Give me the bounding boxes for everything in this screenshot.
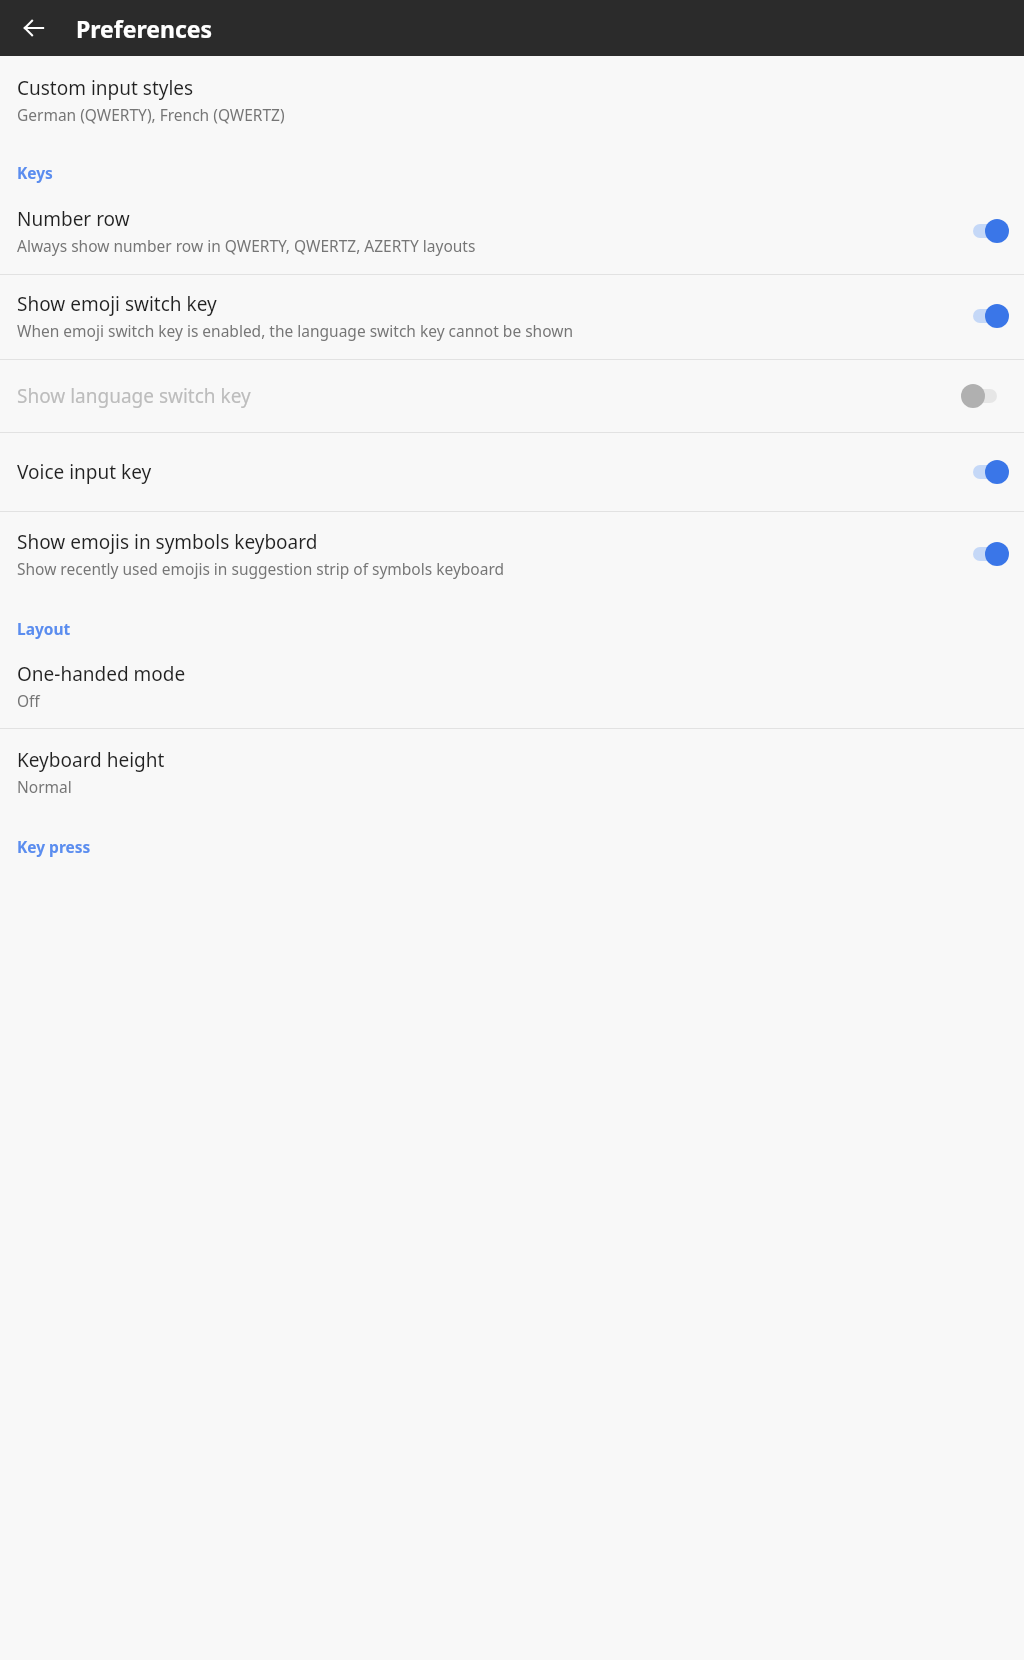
- button[interactable]: Number row: [0, 192, 1024, 274]
- button: Show language switch key: [0, 360, 1024, 432]
- staticText: Off: [17, 690, 40, 711]
- button[interactable]: Voice input key: [0, 433, 1024, 511]
- staticText: When emoji switch key is enabled, the la…: [17, 320, 574, 341]
- staticText: Always show number row in QWERTY, QWERTZ…: [17, 235, 476, 256]
- button: Toggle Show language switch key: [964, 379, 1010, 413]
- staticText: Show recently used emojis in suggestion …: [17, 558, 505, 579]
- button[interactable]: Back: [10, 4, 58, 52]
- button[interactable]: Toggle Number row: [964, 214, 1010, 248]
- button[interactable]: Keyboard height: [0, 729, 1024, 815]
- staticText: Show emoji switch key: [17, 291, 217, 317]
- staticText: Keyboard height: [17, 747, 165, 773]
- button[interactable]: Toggle Voice input key: [964, 455, 1010, 489]
- staticText: Preferences: [76, 13, 213, 44]
- staticText: Number row: [17, 206, 130, 232]
- staticText: Keys: [17, 162, 1024, 183]
- staticText: Show language switch key: [17, 383, 251, 409]
- staticText: Key press: [17, 836, 1024, 857]
- button[interactable]: Show emoji switch key: [0, 275, 1024, 359]
- staticText: Custom input styles: [17, 75, 194, 101]
- button[interactable]: One-handed mode: [0, 648, 1024, 728]
- button[interactable]: Custom input styles: [0, 56, 1024, 141]
- staticText: German (QWERTY), French (QWERTZ): [17, 104, 285, 125]
- staticText: Layout: [17, 618, 1024, 639]
- staticText: One-handed mode: [17, 661, 186, 687]
- button[interactable]: Toggle Show emojis in symbols keyboard: [964, 537, 1010, 571]
- staticText: Voice input key: [17, 459, 152, 485]
- staticText: Normal: [17, 776, 72, 797]
- staticText: Show emojis in symbols keyboard: [17, 529, 318, 555]
- button[interactable]: Show emojis in symbols keyboard: [0, 512, 1024, 597]
- button[interactable]: Toggle Show emoji switch key: [964, 299, 1010, 333]
